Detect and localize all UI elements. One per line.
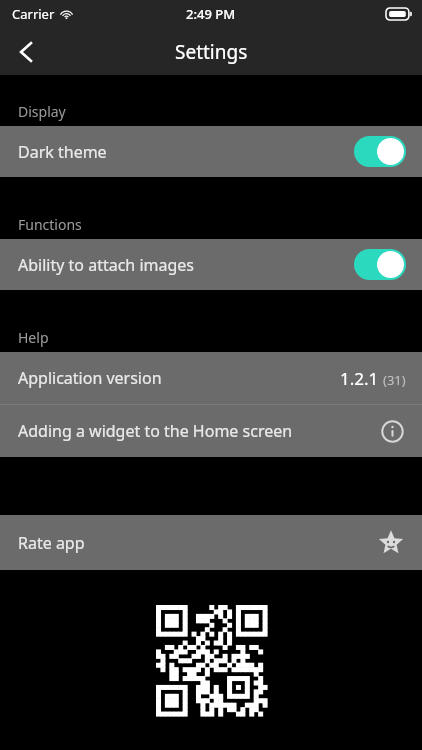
button[interactable]: Dark theme xyxy=(0,126,422,177)
button[interactable]: Rate app xyxy=(0,515,422,570)
staticText: Ability to attach images xyxy=(18,254,194,276)
staticText: Help xyxy=(18,328,49,347)
button[interactable]: Back xyxy=(0,28,52,75)
button[interactable]: Application version xyxy=(0,352,422,404)
button[interactable]: Ability to attach images xyxy=(0,239,422,290)
staticText: Carrier xyxy=(12,5,55,23)
staticText: Functions xyxy=(18,215,82,234)
button[interactable]: Toggle xyxy=(354,136,406,167)
staticText: Display xyxy=(18,102,66,121)
other: Rate app xyxy=(376,528,406,558)
staticText: Adding a widget to the Home screen xyxy=(18,420,293,442)
staticText: Settings xyxy=(175,39,248,65)
staticText: (31) xyxy=(383,371,406,389)
staticText: Rate app xyxy=(18,532,85,554)
staticText: Dark theme xyxy=(18,141,107,163)
staticText: Application version xyxy=(18,367,162,389)
staticText: 1.2.1 xyxy=(340,367,379,390)
staticText: 2:49 PM xyxy=(186,5,236,23)
other: Info xyxy=(378,417,406,445)
button[interactable]: Adding a widget to the Home screen xyxy=(0,405,422,457)
button[interactable]: Toggle xyxy=(354,249,406,280)
